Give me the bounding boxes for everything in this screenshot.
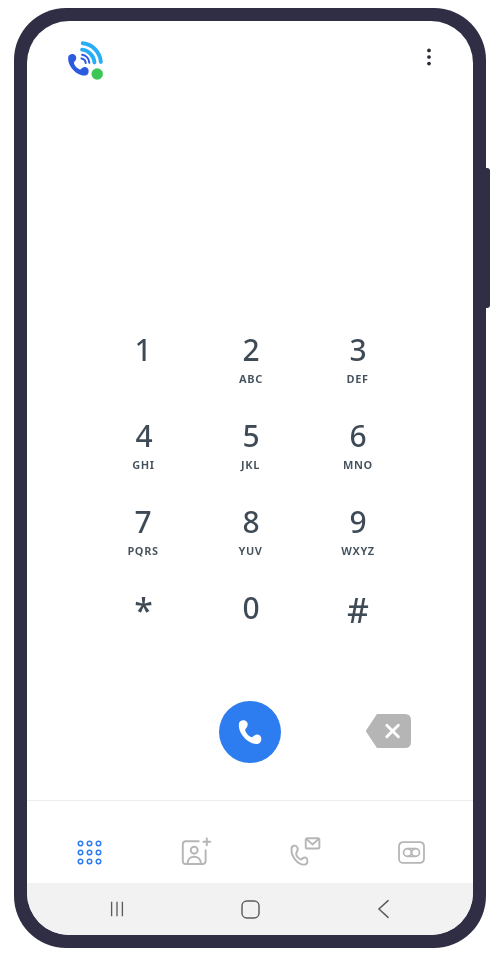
button[interactable]: 7 (89, 499, 197, 585)
staticText: # (347, 587, 369, 633)
staticText: 4 (135, 415, 153, 456)
staticText: ABC (239, 371, 263, 386)
staticText: GHI (132, 457, 155, 472)
staticText: 8 (242, 501, 260, 542)
staticText: JKL (241, 457, 260, 472)
staticText: 0 (242, 587, 260, 628)
staticText: 5 (242, 415, 260, 456)
button[interactable]: 8 (197, 499, 304, 585)
button[interactable]: Backspace (365, 714, 411, 748)
button[interactable]: Recent apps (74, 887, 160, 931)
button[interactable]: 5 (197, 413, 304, 499)
button[interactable]: Keypad (43, 823, 135, 881)
staticText: 9 (349, 501, 367, 542)
button[interactable]: 9 (304, 499, 411, 585)
staticText: 7 (134, 501, 152, 542)
button[interactable]: More options (407, 35, 451, 79)
staticText: YUV (238, 543, 263, 558)
button[interactable]: 2 (197, 327, 304, 413)
button[interactable]: 1 (89, 327, 197, 413)
button[interactable]: Call (219, 701, 281, 763)
button[interactable]: Phone app (65, 39, 111, 85)
staticText: * (134, 587, 153, 633)
button[interactable]: 6 (304, 413, 411, 499)
staticText: 2 (242, 329, 260, 370)
button[interactable]: 0 (197, 585, 304, 663)
button[interactable]: Back (340, 887, 426, 931)
button[interactable]: * (89, 585, 197, 663)
button[interactable]: Call with message (258, 823, 350, 881)
staticText: 3 (349, 329, 367, 370)
button[interactable]: Voicemail (365, 823, 457, 881)
staticText: WXYZ (341, 543, 375, 558)
button[interactable]: 3 (304, 327, 411, 413)
staticText: 6 (349, 415, 367, 456)
button[interactable]: # (304, 585, 411, 663)
staticText: PQRS (127, 543, 159, 558)
button[interactable]: 4 (89, 413, 197, 499)
button[interactable]: Add contact (150, 823, 242, 881)
staticText: DEF (346, 371, 369, 386)
staticText: 1 (134, 329, 152, 370)
staticText: MNO (343, 457, 373, 472)
button[interactable]: Home (207, 887, 293, 931)
